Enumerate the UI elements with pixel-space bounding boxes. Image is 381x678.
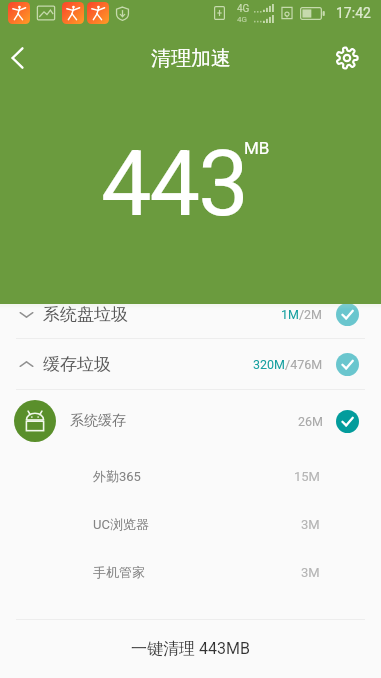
staticText: 320M/476M xyxy=(253,357,323,372)
button[interactable]: 系统缓存 xyxy=(0,390,381,452)
staticText: 外勤365 xyxy=(93,468,141,484)
button[interactable]: 一键清理 443MB xyxy=(0,620,381,678)
staticText: 3M xyxy=(301,565,320,580)
button[interactable]: Back xyxy=(0,32,43,84)
staticText: 4G xyxy=(237,3,250,15)
staticText: 缓存垃圾 xyxy=(43,354,111,375)
staticText: 1M/2M xyxy=(281,307,323,322)
staticText: 清理加速 xyxy=(151,46,231,71)
staticText: 手机管家 xyxy=(93,564,145,580)
button[interactable]: 手机管家 xyxy=(0,548,381,596)
staticText: 系统缓存 xyxy=(70,412,126,430)
staticText: MB xyxy=(244,138,270,158)
staticText: 15M xyxy=(294,469,320,484)
staticText: 17:42 xyxy=(336,5,371,21)
staticText: 443 xyxy=(101,132,247,237)
button[interactable]: 缓存垃圾 xyxy=(0,339,381,389)
staticText: 4G xyxy=(237,15,247,23)
staticText: 一键清理 443MB xyxy=(131,639,250,659)
button[interactable]: 系统盘垃圾 xyxy=(0,304,381,331)
staticText: 3M xyxy=(301,517,320,532)
staticText: 系统盘垃圾 xyxy=(43,304,128,325)
button[interactable]: 外勤365 xyxy=(0,452,381,500)
staticText: 26M xyxy=(298,414,323,429)
button[interactable]: Settings xyxy=(321,32,373,84)
button[interactable]: UC浏览器 xyxy=(0,500,381,548)
staticText: UC浏览器 xyxy=(93,516,149,532)
